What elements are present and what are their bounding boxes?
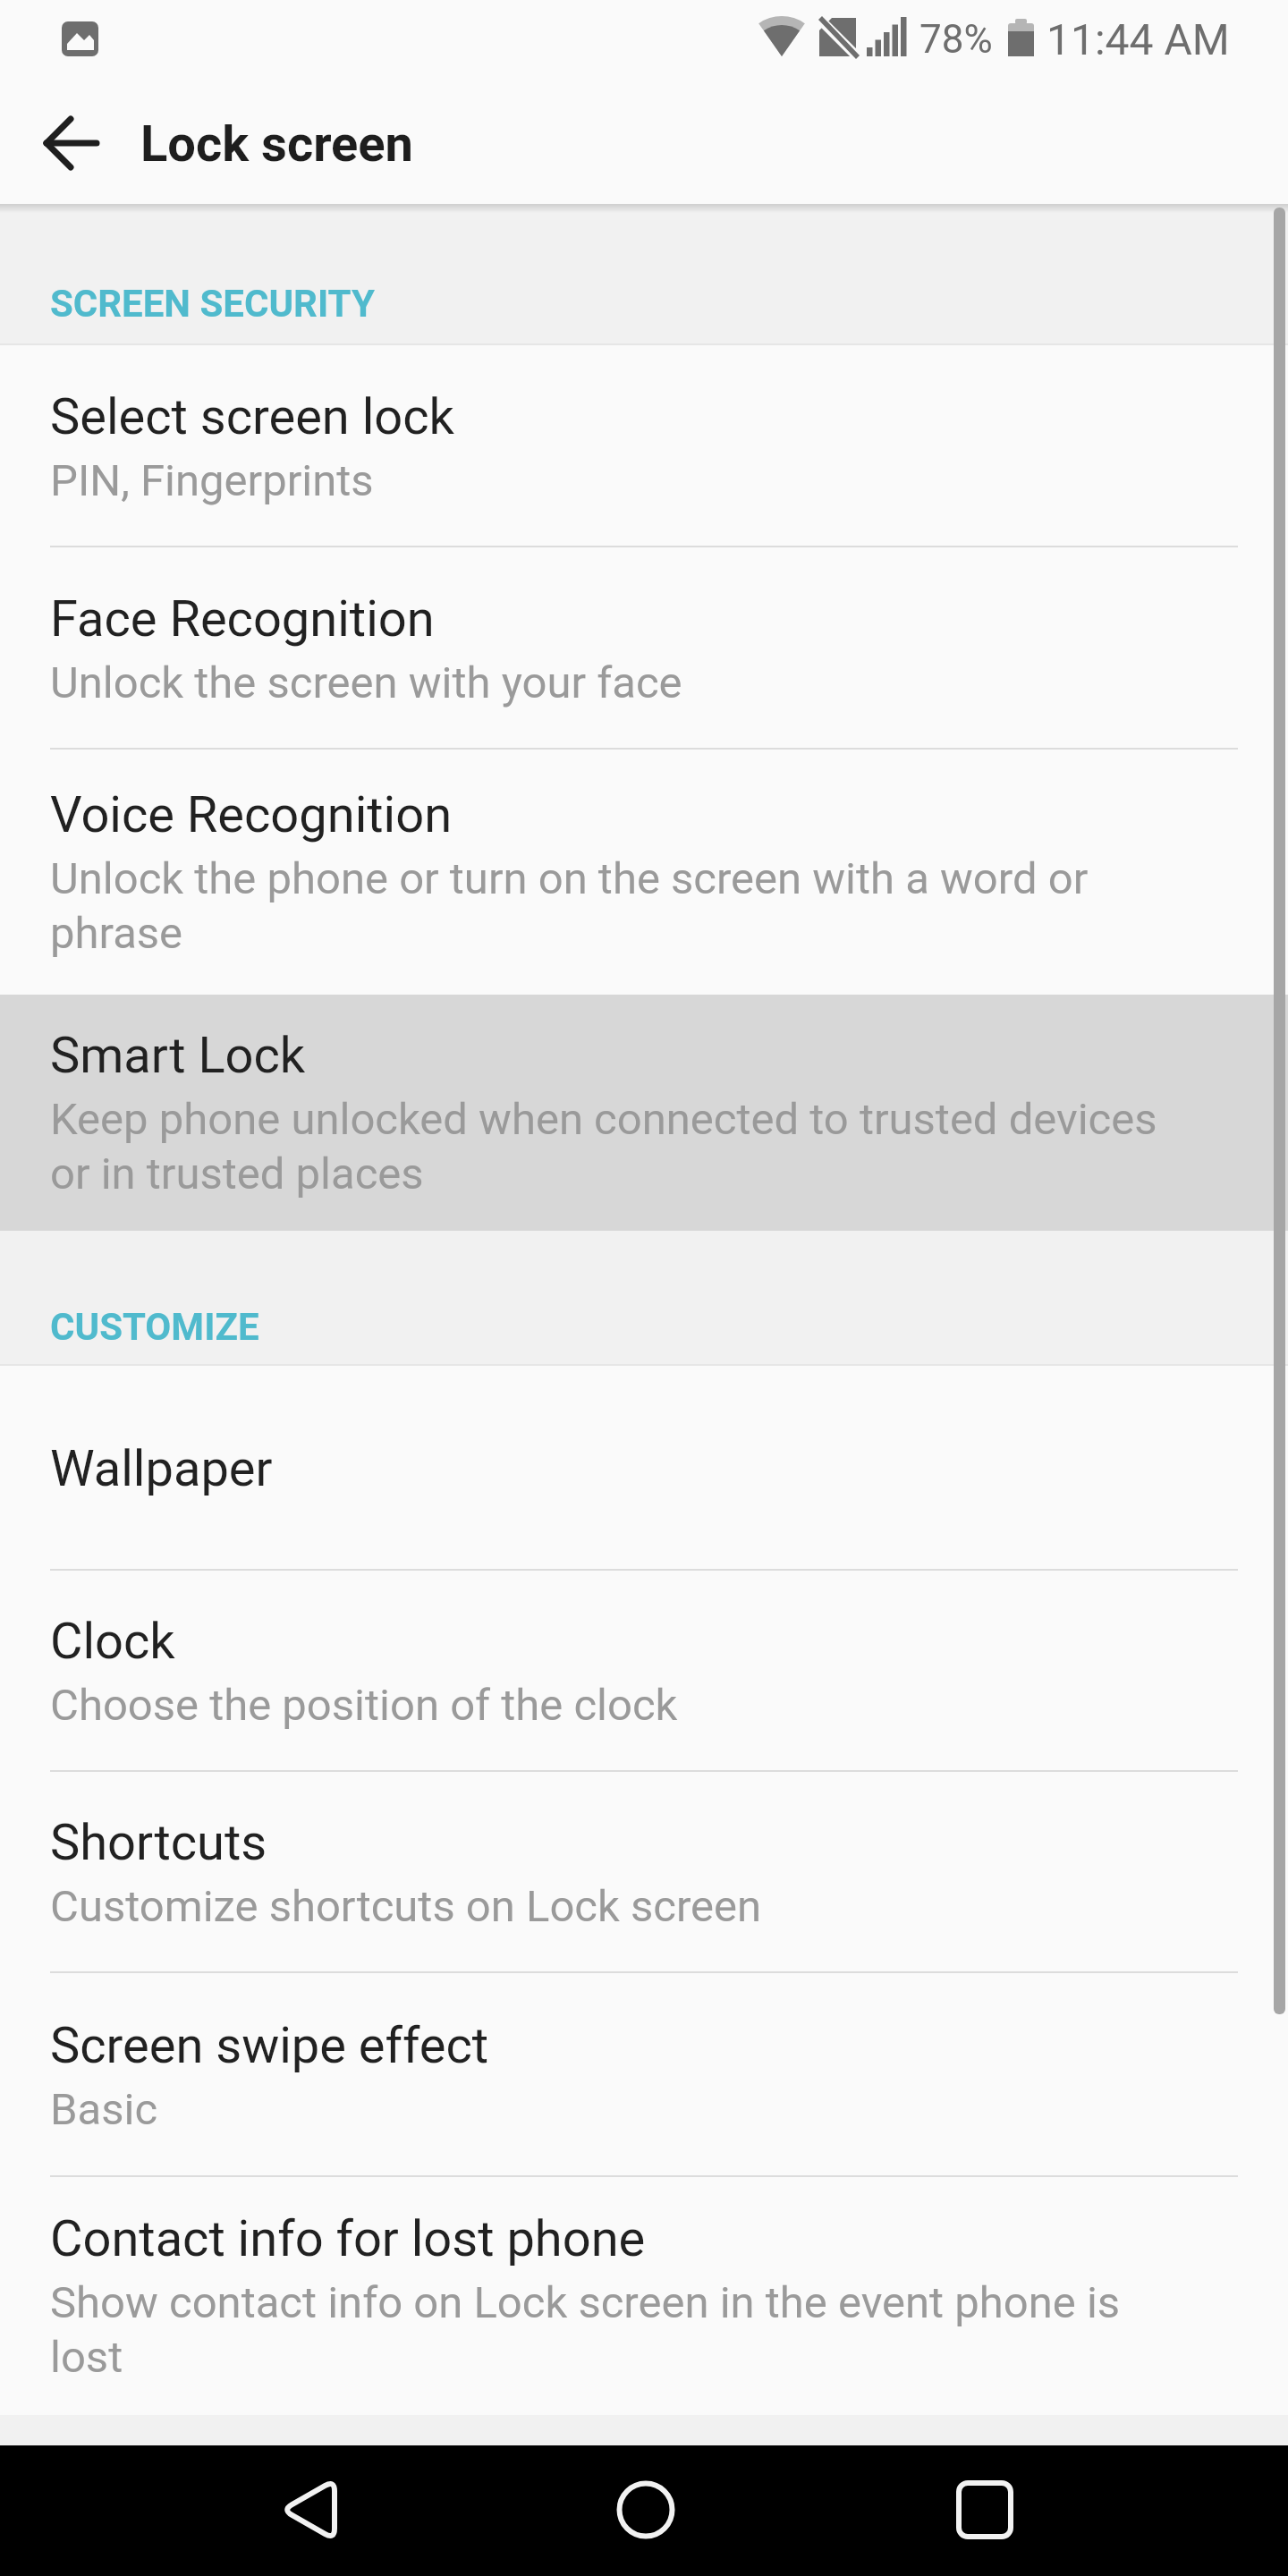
staticText: Basic [50, 2084, 158, 2135]
staticText: Clock [50, 1612, 175, 1671]
staticText: Select screen lock [50, 387, 454, 446]
button[interactable]: Wallpaper [0, 1366, 1288, 1571]
button[interactable]: Face Recognition [0, 547, 1288, 750]
staticText: 11:44 AM [1046, 14, 1230, 64]
button[interactable] [900, 2445, 1070, 2576]
staticText: 78% [919, 16, 993, 63]
staticText: Contact info for lost phone [50, 2209, 646, 2268]
staticText: Screen swipe effect [50, 2016, 489, 2075]
staticText: Smart Lock [50, 1026, 306, 1085]
staticText: Lock screen [140, 114, 413, 174]
staticText: CUSTOMIZE [50, 1305, 259, 1349]
staticText: Unlock the phone or turn on the screen w… [50, 853, 1177, 959]
button[interactable]: Shortcuts [0, 1772, 1288, 1973]
staticText: Wallpaper [50, 1439, 273, 1498]
staticText: Keep phone unlocked when connected to tr… [50, 1094, 1177, 1199]
button[interactable]: Select screen lock [0, 345, 1288, 547]
staticText: Show contact info on Lock screen in the … [50, 2277, 1177, 2383]
staticText: Shortcuts [50, 1813, 267, 1872]
staticText: Face Recognition [50, 589, 435, 648]
button[interactable]: Voice Recognition [0, 750, 1288, 995]
staticText: Customize shortcuts on Lock screen [50, 1881, 762, 1932]
staticText: Choose the position of the clock [50, 1680, 678, 1731]
button[interactable] [27, 103, 116, 183]
button[interactable]: Clock [0, 1571, 1288, 1772]
staticText: PIN, Fingerprints [50, 455, 374, 506]
button[interactable]: Smart Lock [0, 995, 1288, 1231]
button[interactable] [250, 2445, 420, 2576]
staticText: Unlock the screen with your face [50, 657, 682, 708]
staticText: Voice Recognition [50, 785, 453, 844]
staticText: SCREEN SECURITY [50, 282, 375, 326]
button[interactable]: Screen swipe effect [0, 1973, 1288, 2177]
button[interactable] [561, 2445, 731, 2576]
button[interactable]: Contact info for lost phone [0, 2177, 1288, 2415]
